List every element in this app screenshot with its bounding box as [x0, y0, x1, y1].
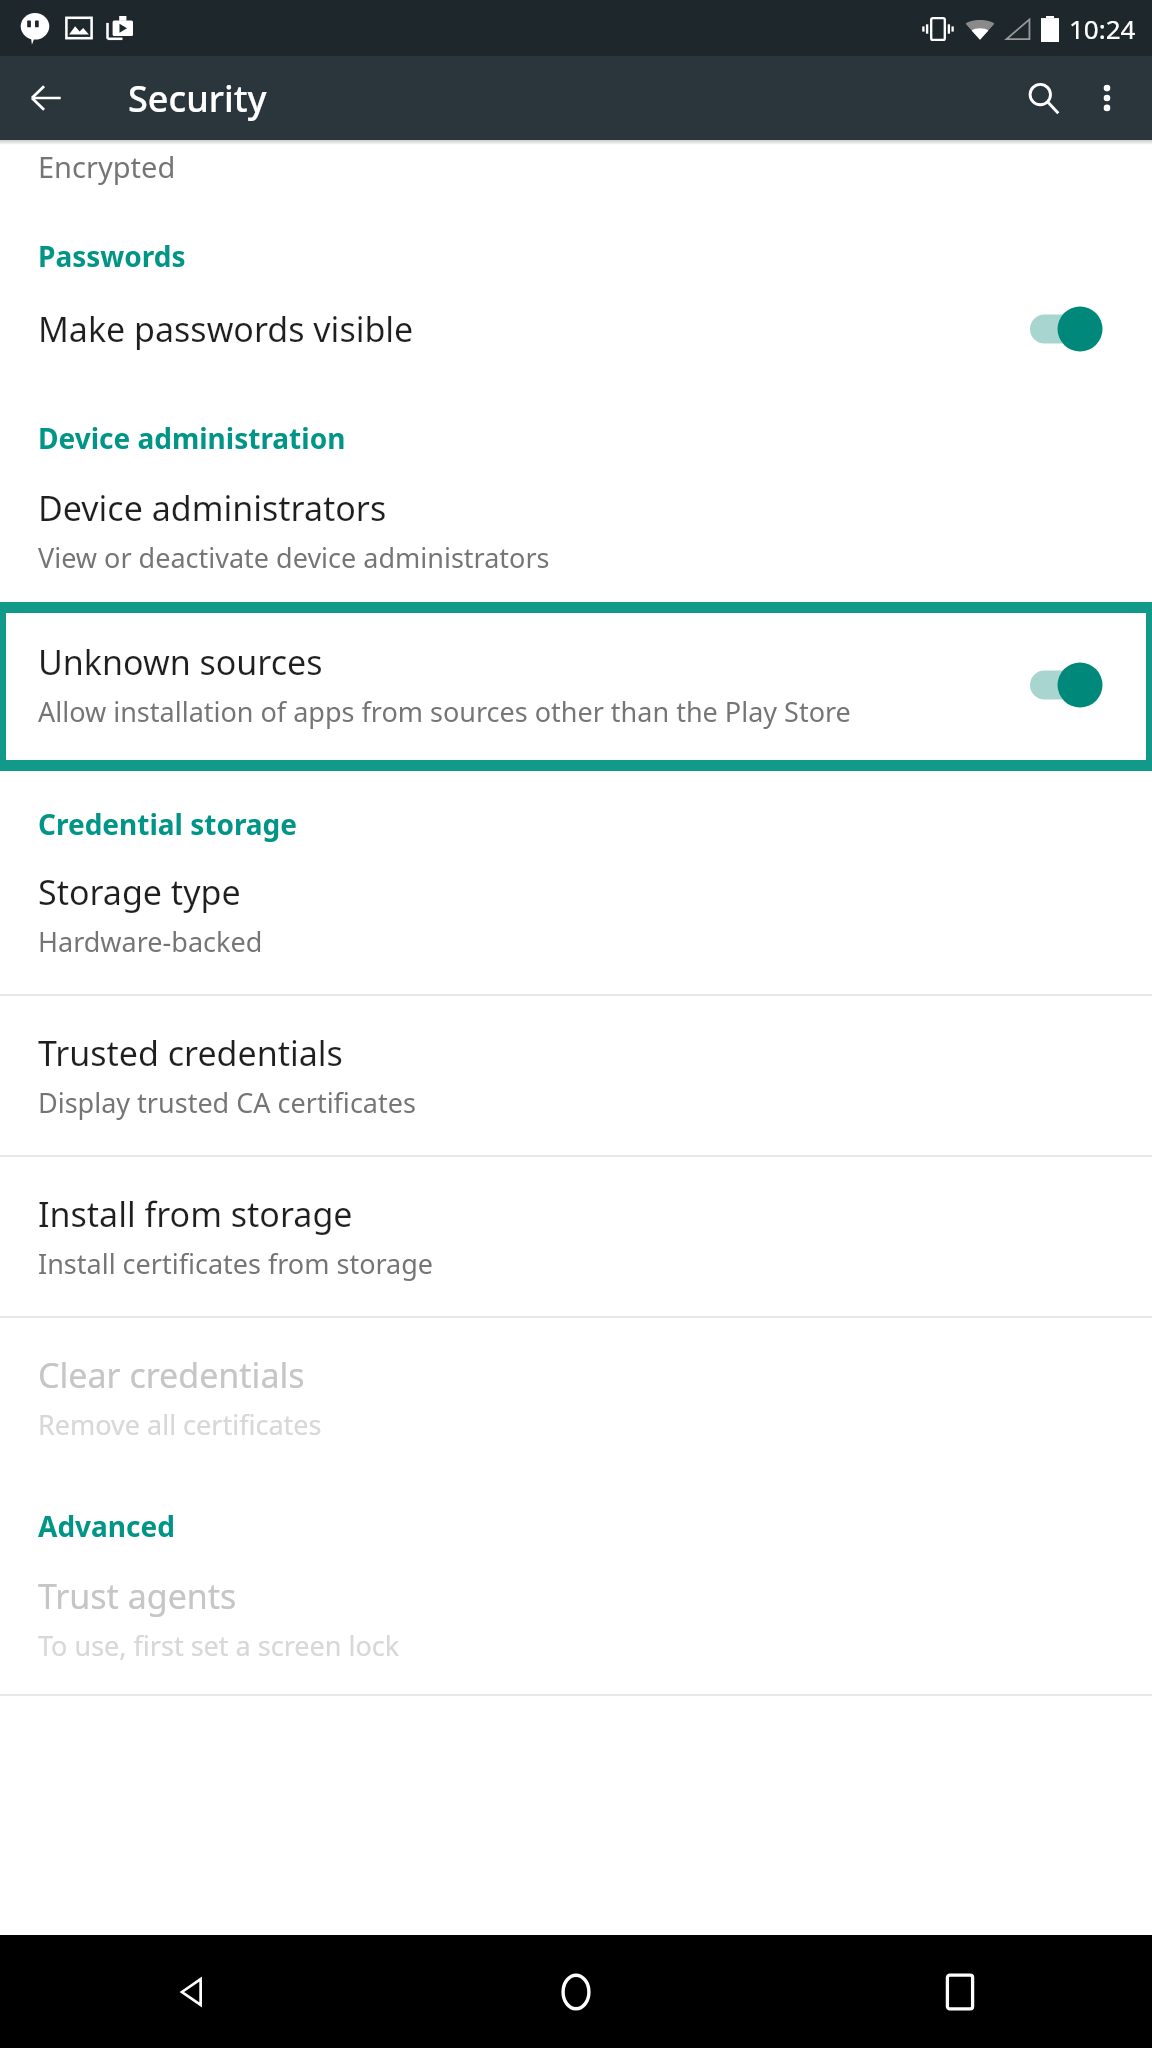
staticText: Advanced — [38, 1507, 175, 1545]
staticText: Remove all certificates — [38, 1406, 322, 1443]
staticText: Make passwords visible — [38, 306, 1030, 352]
staticText: Clear credentials — [38, 1352, 305, 1398]
staticText: Credential storage — [38, 805, 298, 843]
staticText: Trusted credentials — [38, 1030, 343, 1076]
staticText: Install certificates from storage — [38, 1245, 434, 1282]
button[interactable]: Storage type — [0, 843, 1152, 994]
button[interactable]: Back — [0, 1935, 384, 2048]
button[interactable]: Make passwords visible — [0, 275, 1152, 383]
staticText: 10:24 — [1069, 11, 1136, 46]
staticText: Unknown sources — [38, 639, 323, 685]
button[interactable] — [1030, 304, 1110, 354]
staticText: Allow installation of apps from sources … — [38, 693, 851, 730]
button[interactable]: Trusted credentials — [0, 996, 1152, 1155]
button[interactable]: Search — [1010, 65, 1076, 131]
button[interactable]: Encrypted — [0, 145, 1152, 207]
button[interactable]: Device administrators — [0, 457, 1152, 598]
staticText: Device administration — [38, 419, 346, 457]
button[interactable]: Back — [14, 66, 78, 130]
staticText: Storage type — [38, 869, 241, 915]
staticText: View or deactivate device administrators — [38, 539, 550, 576]
staticText: Device administrators — [38, 485, 387, 531]
button[interactable]: Recent apps — [768, 1935, 1152, 2048]
button[interactable] — [1030, 660, 1110, 710]
staticText: Passwords — [38, 237, 186, 275]
button[interactable]: Clear credentials — [0, 1318, 1152, 1477]
staticText: Trust agents — [38, 1573, 237, 1619]
staticText: Hardware-backed — [38, 923, 263, 960]
staticText: Security — [128, 74, 267, 123]
staticText: Install from storage — [38, 1191, 353, 1237]
staticText: To use, first set a screen lock — [38, 1627, 400, 1664]
button[interactable]: Install from storage — [0, 1157, 1152, 1316]
staticText: Encrypted — [38, 147, 176, 186]
staticText: Display trusted CA certificates — [38, 1084, 416, 1121]
button[interactable]: More options — [1076, 67, 1138, 129]
button[interactable]: Trust agents — [0, 1545, 1152, 1694]
button[interactable]: Home — [384, 1935, 768, 2048]
button[interactable]: Unknown sources — [6, 613, 1146, 760]
